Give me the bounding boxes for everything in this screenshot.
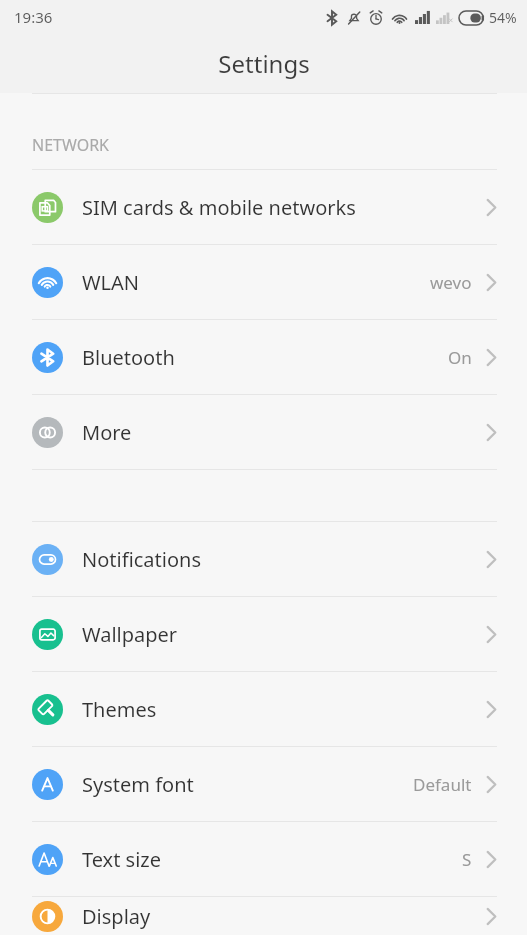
other: More: [38, 423, 57, 442]
button[interactable]: Text size: [0, 822, 527, 896]
staticText: Default: [413, 773, 472, 796]
staticText: Text size: [82, 846, 162, 873]
staticText: WLAN: [82, 269, 140, 296]
other: Notifications: [38, 550, 57, 569]
staticText: 54%: [489, 8, 517, 27]
staticText: wevo: [430, 271, 472, 294]
staticText: Bluetooth: [82, 344, 175, 371]
staticText: SIM cards & mobile networks: [82, 194, 356, 221]
other: Themes: [38, 700, 57, 719]
other: Display: [38, 907, 57, 926]
button[interactable]: More: [0, 395, 527, 469]
staticText: Display: [82, 903, 151, 930]
other: Text size: [38, 850, 57, 869]
button[interactable]: Wallpaper: [0, 597, 527, 671]
button[interactable]: WLAN: [0, 245, 527, 319]
staticText: On: [448, 346, 472, 369]
staticText: Notifications: [82, 546, 201, 573]
staticText: System font: [82, 771, 194, 798]
button[interactable]: Themes: [0, 672, 527, 746]
staticText: NETWORK: [32, 134, 110, 156]
other: Bluetooth: [38, 348, 57, 367]
staticText: Themes: [82, 696, 157, 723]
button[interactable]: Bluetooth: [0, 320, 527, 394]
button[interactable]: Display: [0, 897, 527, 935]
other: SIM: [38, 198, 57, 217]
button[interactable]: System font: [0, 747, 527, 821]
staticText: S: [462, 848, 472, 871]
staticText: 19:36: [14, 7, 53, 27]
other: System font: [38, 775, 57, 794]
staticText: More: [82, 419, 132, 446]
staticText: Wallpaper: [82, 621, 178, 648]
button[interactable]: SIM: [0, 170, 527, 244]
other: Wallpaper: [38, 625, 57, 644]
other: WLAN: [38, 273, 57, 292]
button[interactable]: Notifications: [0, 522, 527, 596]
staticText: Settings: [218, 47, 310, 80]
